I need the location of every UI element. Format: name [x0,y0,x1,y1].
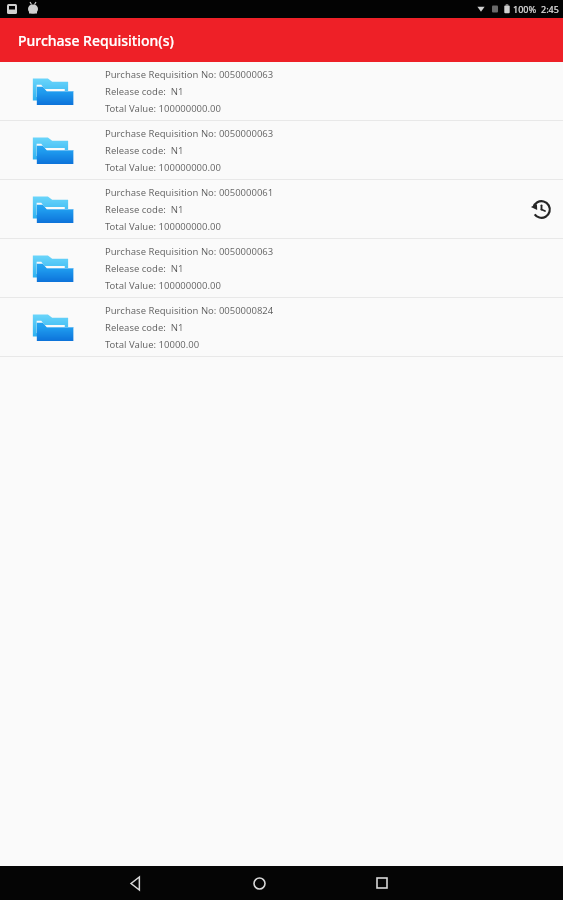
button[interactable]: Purchase Requisition No: 0050000824 [0,298,563,356]
staticText: Total Value: 10000.00 [105,338,200,351]
staticText: Release code: N1 [105,85,184,98]
button[interactable]: Back [116,866,156,900]
staticText: 2:45 [541,3,559,15]
button[interactable]: Recent apps [362,866,402,900]
staticText: Total Value: 100000000.00 [105,161,221,174]
button[interactable]: Purchase Requisition No: 0050000063 [0,239,563,297]
staticText: Total Value: 100000000.00 [105,220,221,233]
staticText: 100% [513,3,537,15]
button[interactable]: Purchase Requisition No: 0050000061 [0,180,563,238]
button[interactable]: Release history [519,180,563,238]
button[interactable]: Purchase Requisition No: 0050000063 [0,121,563,179]
staticText: Purchase Requisition No: 0050000063 [105,68,274,81]
staticText: Release code: N1 [105,203,184,216]
staticText: Purchase Requisition No: 0050000061 [105,186,274,199]
staticText: Total Value: 100000000.00 [105,102,221,115]
staticText: Release code: N1 [105,144,184,157]
staticText: Purchase Requisition No: 0050000824 [105,304,274,317]
staticText: Purchase Requisition No: 0050000063 [105,127,274,140]
staticText: Purchase Requisition No: 0050000063 [105,245,274,258]
button[interactable]: Home [239,866,279,900]
button[interactable]: Purchase Requisition No: 0050000063 [0,62,563,120]
staticText: Total Value: 100000000.00 [105,279,221,292]
staticText: Purchase Requisition(s) [18,31,174,50]
staticText: Release code: N1 [105,321,184,334]
staticText: Release code: N1 [105,262,184,275]
